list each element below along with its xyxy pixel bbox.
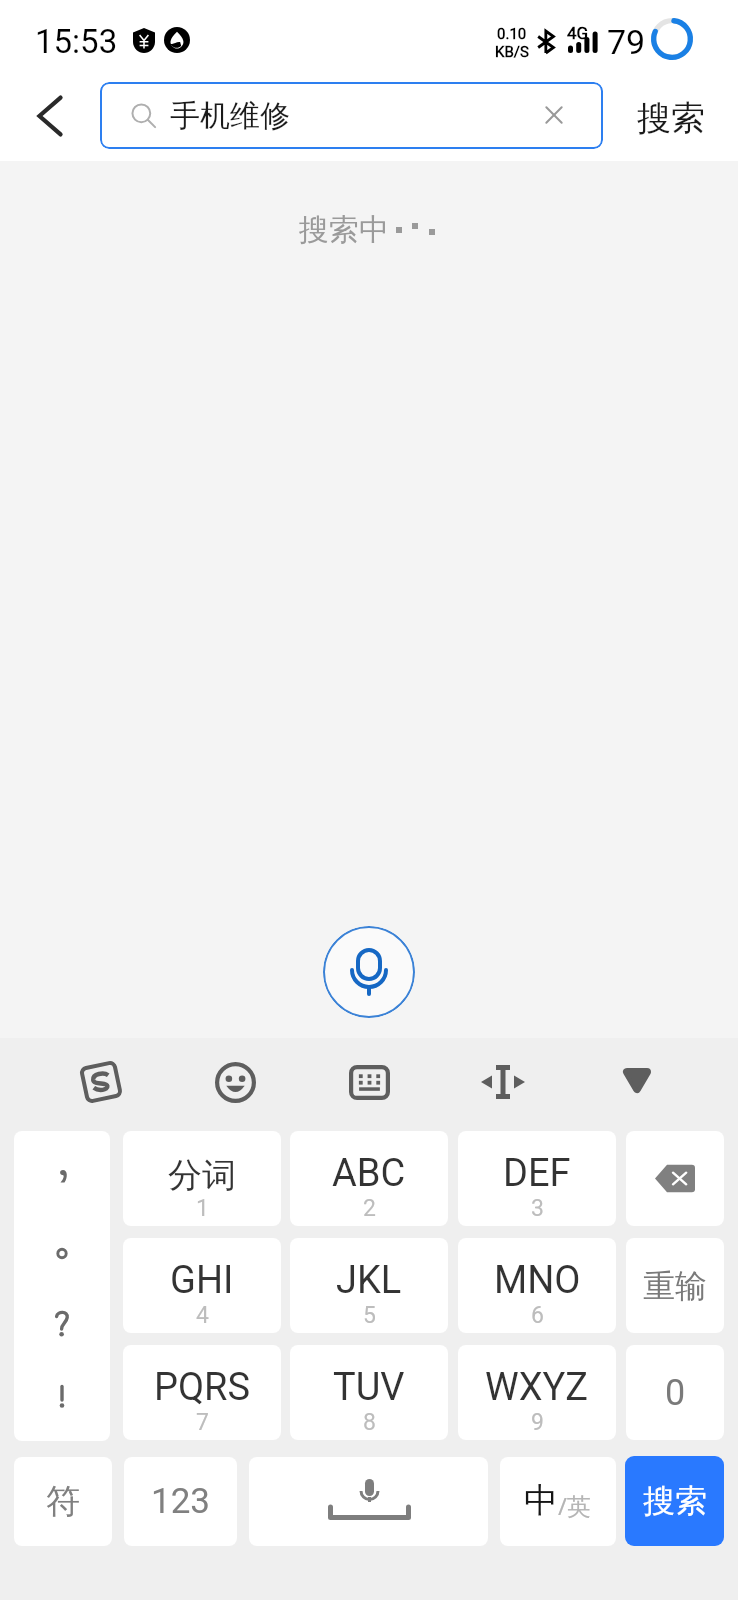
button[interactable]: WXYZ — [458, 1345, 616, 1440]
button[interactable]: Back — [10, 76, 90, 156]
button[interactable]: Keyboard layout — [324, 1037, 414, 1127]
staticText: 5 — [363, 1302, 376, 1328]
button[interactable]: Backspace — [626, 1131, 724, 1226]
staticText: 8 — [363, 1409, 376, 1435]
button[interactable]: ABC — [290, 1131, 448, 1226]
staticText: 79 — [607, 22, 646, 62]
staticText: 2 — [363, 1195, 376, 1221]
staticText: /英 — [558, 1489, 591, 1522]
button[interactable]: PQRS — [123, 1345, 281, 1440]
staticText: 7 — [196, 1409, 209, 1435]
staticText: 3 — [531, 1195, 544, 1221]
staticText: 搜索 — [643, 1481, 707, 1521]
staticText: MNO — [494, 1258, 581, 1300]
staticText: PQRS — [154, 1365, 251, 1407]
staticText: TUV — [333, 1365, 405, 1407]
staticText: 4G — [567, 23, 589, 43]
button[interactable]: Voice search — [323, 926, 415, 1018]
staticText: KB/S — [495, 43, 529, 61]
button[interactable]: JKL — [290, 1238, 448, 1333]
staticText: GHI — [170, 1258, 234, 1300]
staticText: 4 — [196, 1302, 209, 1328]
staticText: 123 — [151, 1481, 211, 1522]
staticText: 1 — [196, 1195, 209, 1221]
staticText: 9 — [531, 1409, 544, 1435]
staticText: ABC — [332, 1151, 406, 1193]
button[interactable]: 中 — [500, 1457, 616, 1546]
button[interactable]: 手机维修 — [100, 82, 603, 149]
button[interactable]: Emoji — [190, 1037, 280, 1127]
staticText: 重输 — [643, 1266, 707, 1306]
button[interactable] — [249, 1457, 488, 1546]
button[interactable]: 分词 — [123, 1131, 281, 1226]
staticText: 0 — [665, 1372, 686, 1414]
staticText: 6 — [531, 1302, 544, 1328]
staticText: 手机维修 — [170, 97, 290, 135]
button[interactable]: 重输 — [626, 1238, 724, 1333]
button[interactable]: Hide keyboard — [592, 1037, 682, 1127]
staticText: JKL — [336, 1258, 402, 1300]
staticText: 搜索中 — [299, 211, 389, 249]
button[interactable]: Clear text — [528, 89, 580, 141]
staticText: DEF — [503, 1151, 571, 1193]
button[interactable]: 0 — [626, 1345, 724, 1440]
button[interactable]: MNO — [458, 1238, 616, 1333]
staticText: 分词 — [168, 1154, 236, 1196]
button[interactable]: 符 — [14, 1457, 112, 1546]
staticText: 符 — [46, 1480, 80, 1523]
staticText: 搜索 — [637, 97, 705, 140]
button[interactable]: Move cursor — [458, 1037, 548, 1127]
staticText: 15:53 — [35, 22, 118, 61]
staticText: WXYZ — [485, 1365, 589, 1407]
button[interactable]: Sogou input — [56, 1037, 146, 1127]
button[interactable]: TUV — [290, 1345, 448, 1440]
button[interactable]: 搜索 — [625, 1456, 724, 1546]
staticText: 中 — [524, 1479, 558, 1522]
staticText: 0.10 — [497, 25, 527, 43]
other: Backspace — [626, 1131, 724, 1226]
button[interactable]: 搜索 — [618, 76, 724, 161]
button[interactable]: GHI — [123, 1238, 281, 1333]
button[interactable] — [14, 1131, 110, 1441]
button[interactable]: DEF — [458, 1131, 616, 1226]
button[interactable]: 123 — [124, 1457, 237, 1546]
